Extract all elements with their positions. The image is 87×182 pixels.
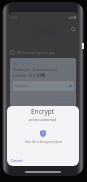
staticText: ZenCrypt [28,27,59,36]
button[interactable]: 2023-mysteryphoto.jpg [10,58,76,70]
button[interactable]: 2023-mysteryphoto.jpg [10,82,76,94]
button[interactable]: Encrypt [55,97,74,102]
staticText: 9:41 [11,15,18,20]
button[interactable]: 2023-mysteryphoto.jpg [10,130,76,142]
button[interactable]: 2023-mysteryphoto.jpg [10,94,76,106]
button[interactable]: 2023-mysteryphoto.jpg [10,118,76,130]
button[interactable]: 2023-mysteryphoto.jpg [10,70,76,82]
staticText: 2023-mysteryphoto.jpg [17,62,55,67]
staticText: 2023-mysteryphoto.jpg [17,134,55,139]
staticText: 2023-mysteryphoto.jpg [17,50,55,55]
staticText: Password [15,84,29,88]
staticText: Your file is being encrypted [25,140,62,144]
staticText: 2023-mysteryphoto.jpg [17,110,55,115]
staticText: Encrypt [18,60,33,65]
button[interactable]: Password [13,81,74,91]
staticText: 2023-mysteryphoto.jpg [17,74,55,79]
staticText: 2023-mysteryphoto.jpg [17,86,55,91]
staticText: Cancel [11,158,23,163]
staticText: Total Size: 64.32 MB [13,74,42,78]
staticText: Encrypt [59,97,72,102]
button[interactable]: Search [69,25,77,33]
button[interactable]: 2023-mysteryphoto.jpg [10,106,76,118]
button[interactable]: 2023-mysteryphoto.jpg [10,46,76,58]
button[interactable]: Cancel [11,158,23,163]
staticText: File Name(s): private-video.mp4 [13,68,58,72]
button[interactable]: 2023-mysteryphoto.jpg [10,142,76,154]
staticText: Encrypt [31,107,55,116]
staticText: private-video.mp4 [29,118,57,122]
